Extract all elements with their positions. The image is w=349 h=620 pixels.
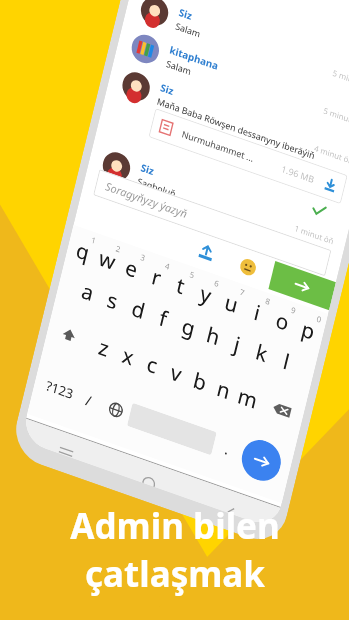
- staticText: Sagboluň: [136, 175, 177, 199]
- button[interactable]: k: [246, 332, 278, 373]
- staticText: l: [280, 347, 293, 377]
- button[interactable]: 3: [116, 245, 149, 286]
- staticText: f: [156, 303, 171, 334]
- staticText: Maňa Baba Röwşen dessanyny iberäýiň: [156, 95, 317, 161]
- button[interactable]: a: [71, 271, 104, 312]
- button[interactable]: b: [184, 361, 216, 402]
- button[interactable]: s: [96, 280, 130, 321]
- staticText: Siz: [159, 80, 176, 98]
- staticText: e: [122, 253, 141, 285]
- staticText: Siz: [139, 160, 156, 178]
- staticText: çatlaşmak: [85, 550, 265, 598]
- button[interactable]: Attach: [189, 233, 224, 271]
- staticText: n: [214, 374, 233, 406]
- staticText: 9: [290, 304, 297, 316]
- button[interactable]: 2: [91, 236, 124, 277]
- button[interactable]: 1: [67, 227, 99, 269]
- staticText: 7: [239, 286, 246, 298]
- staticText: z: [96, 332, 112, 364]
- button[interactable]: Nurmuhammet ...: [148, 108, 348, 204]
- button[interactable]: .: [210, 428, 244, 469]
- staticText: .: [223, 439, 231, 459]
- button[interactable]: l: [270, 341, 303, 382]
- staticText: t: [173, 271, 188, 301]
- staticText: p: [298, 314, 318, 347]
- button[interactable]: Backspace: [261, 388, 303, 432]
- staticText: k: [253, 337, 271, 369]
- staticText: 2: [115, 242, 122, 255]
- staticText: j: [231, 330, 243, 360]
- staticText: Siz: [177, 5, 194, 23]
- staticText: x: [119, 341, 137, 373]
- button[interactable]: Recents: [53, 438, 81, 460]
- staticText: v: [168, 358, 185, 389]
- button[interactable]: Siz: [123, 0, 349, 110]
- staticText: 4 minut öň: [313, 142, 349, 166]
- staticText: Nurmuhammet ...: [181, 127, 256, 164]
- button[interactable]: x: [112, 335, 145, 377]
- staticText: /: [84, 390, 94, 411]
- staticText: 1 minut öň: [293, 222, 335, 246]
- staticText: kitaphana: [168, 42, 220, 73]
- staticText: 5: [189, 268, 196, 280]
- button[interactable]: d: [122, 289, 155, 330]
- button[interactable]: Language: [98, 389, 134, 430]
- button[interactable]: Shift: [48, 313, 90, 358]
- button[interactable]: Send: [268, 261, 336, 310]
- button[interactable]: c: [137, 344, 168, 385]
- button[interactable]: Home: [136, 467, 164, 489]
- staticText: 0: [316, 313, 323, 325]
- staticText: a: [79, 276, 97, 308]
- staticText: o: [273, 305, 292, 338]
- staticText: m: [235, 381, 261, 416]
- button[interactable]: kitaphana: [114, 24, 349, 148]
- button[interactable]: 4: [141, 253, 173, 295]
- button[interactable]: 8: [241, 288, 275, 330]
- staticText: ?123: [44, 376, 75, 403]
- staticText: w: [96, 243, 119, 277]
- button[interactable]: Enter: [235, 432, 287, 489]
- staticText: 4: [164, 260, 171, 272]
- button[interactable]: h: [196, 315, 229, 356]
- staticText: u: [222, 288, 241, 320]
- staticText: b: [190, 366, 209, 398]
- button[interactable]: 7: [215, 279, 249, 321]
- button[interactable]: 5: [165, 262, 198, 303]
- button[interactable]: Emoji: [230, 248, 266, 286]
- staticText: 1: [90, 234, 97, 246]
- staticText: y: [197, 279, 214, 311]
- staticText: r: [149, 262, 164, 293]
- button[interactable]: m: [231, 377, 263, 418]
- staticText: i: [251, 298, 264, 328]
- staticText: 3: [139, 251, 147, 263]
- staticText: Salam: [165, 57, 193, 77]
- staticText: Salam: [174, 19, 202, 39]
- button[interactable]: j: [221, 323, 254, 365]
- button[interactable]: g: [172, 306, 204, 347]
- staticText: 5 minut öň: [322, 104, 349, 129]
- button[interactable]: n: [208, 369, 239, 410]
- button[interactable]: Siz: [85, 142, 348, 266]
- button[interactable]: Back: [218, 496, 246, 518]
- button[interactable]: 9: [266, 297, 300, 339]
- staticText: d: [129, 294, 148, 326]
- staticText: h: [204, 320, 223, 352]
- button[interactable]: 6: [190, 271, 223, 312]
- staticText: g: [179, 311, 198, 344]
- button[interactable]: ?123: [39, 368, 80, 411]
- staticText: 5 minut öň: [332, 67, 349, 91]
- button[interactable]: v: [160, 352, 192, 393]
- button[interactable]: 0: [292, 306, 326, 348]
- staticText: 1.96 MB: [280, 162, 316, 185]
- staticText: s: [104, 285, 121, 317]
- button[interactable]: f: [147, 297, 180, 339]
- button[interactable]: Siz: [105, 62, 349, 186]
- staticText: 6: [213, 277, 221, 289]
- staticText: q: [73, 236, 92, 268]
- staticText: c: [144, 349, 161, 381]
- button[interactable]: Soragyňyzy ýazyň: [93, 169, 331, 276]
- button[interactable]: Space: [127, 403, 217, 455]
- button[interactable]: z: [88, 327, 120, 368]
- staticText: 8: [264, 295, 272, 307]
- button[interactable]: /: [73, 380, 105, 420]
